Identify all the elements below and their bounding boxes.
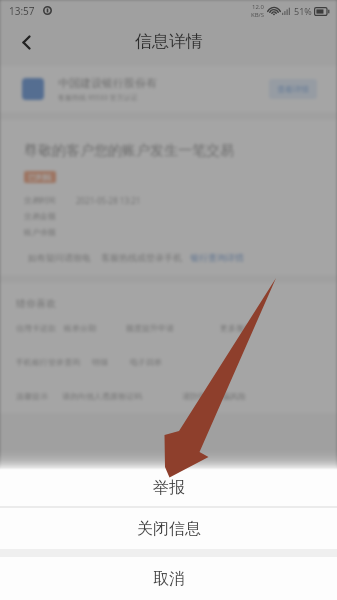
button[interactable]: Back bbox=[10, 26, 42, 58]
staticText: 尊敬的客户您的账户发生一笔交易 bbox=[24, 142, 234, 160]
staticText: 银行查询详情 bbox=[190, 252, 244, 263]
staticText: 信息详情 bbox=[135, 31, 203, 52]
staticText: 明细 bbox=[92, 357, 108, 367]
staticText: 举报 bbox=[153, 478, 185, 498]
staticText: 电子回单 bbox=[130, 357, 162, 367]
staticText: 请勿向他人透露验证码 bbox=[62, 391, 142, 401]
staticText: 客服热线或登录手机 bbox=[101, 252, 182, 263]
staticText: 账户余额 bbox=[24, 227, 56, 237]
staticText: 12.0 bbox=[252, 3, 264, 11]
button[interactable]: 查看详情 bbox=[269, 79, 317, 99]
staticText: 猜你喜欢 bbox=[16, 297, 56, 310]
staticText: 取消 bbox=[153, 569, 185, 589]
staticText: 手机银行登录查询 bbox=[16, 357, 80, 367]
staticText: 关闭信息 bbox=[137, 519, 201, 539]
staticText: 2021-05-28 13:21 bbox=[76, 195, 141, 206]
staticText: 账单分期 bbox=[64, 323, 96, 333]
staticText: 信用卡还款 bbox=[16, 323, 56, 333]
staticText: 13:57 bbox=[9, 4, 35, 18]
staticText: 如有疑问请致电 bbox=[28, 252, 91, 263]
button[interactable]: 关闭信息 bbox=[0, 508, 337, 549]
staticText: 更多服务 bbox=[220, 323, 252, 333]
staticText: 查看详情 bbox=[277, 84, 309, 94]
staticText: KB/S bbox=[251, 11, 265, 19]
staticText: 温馨提示 bbox=[16, 391, 48, 401]
button[interactable]: 举报 bbox=[0, 470, 337, 506]
staticText: 51% bbox=[294, 5, 312, 17]
staticText: 已到账 bbox=[28, 172, 52, 182]
button[interactable]: 取消 bbox=[0, 557, 337, 600]
staticText: 交易金额 bbox=[24, 211, 56, 221]
staticText: 谨防电信诈骗风险 bbox=[182, 391, 246, 401]
staticText: 客服热线 95533 官方认证 bbox=[58, 93, 138, 103]
staticText: 中国建设银行股份有 bbox=[58, 76, 157, 90]
staticText: 额度提升申请 bbox=[126, 323, 174, 333]
staticText: 交易时间 bbox=[24, 195, 56, 205]
